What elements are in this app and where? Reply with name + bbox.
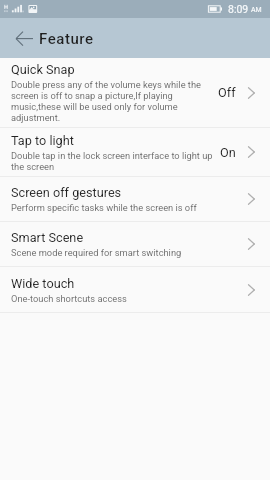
button[interactable]: Wide touch <box>0 267 270 312</box>
button[interactable]: Smart Scene <box>0 222 270 266</box>
staticText: Perform specific tasks while the screen … <box>11 202 197 213</box>
staticText: Feature <box>39 30 94 48</box>
button[interactable]: Quick Snap <box>0 58 270 127</box>
staticText: 8:09 <box>228 3 249 15</box>
staticText: Quick Snap <box>11 62 75 77</box>
staticText: Smart Scene <box>11 230 84 245</box>
staticText: Tap to light <box>11 133 74 148</box>
staticText: One-touch shortcuts access <box>11 293 127 304</box>
button[interactable]: Screen off gestures <box>0 177 270 221</box>
button[interactable]: Back <box>0 18 39 58</box>
staticText: Screen off gestures <box>11 185 122 200</box>
button[interactable]: Tap to light <box>0 128 270 176</box>
staticText: Off <box>218 85 236 100</box>
staticText: Double tap in the lock screen interface … <box>11 150 214 172</box>
staticText: Scene mode required for smart switching <box>11 247 182 258</box>
staticText: Double press any of the volume keys whil… <box>11 79 212 123</box>
staticText: Wide touch <box>11 276 75 291</box>
staticText: On <box>220 145 236 160</box>
staticText: AM <box>251 6 262 14</box>
